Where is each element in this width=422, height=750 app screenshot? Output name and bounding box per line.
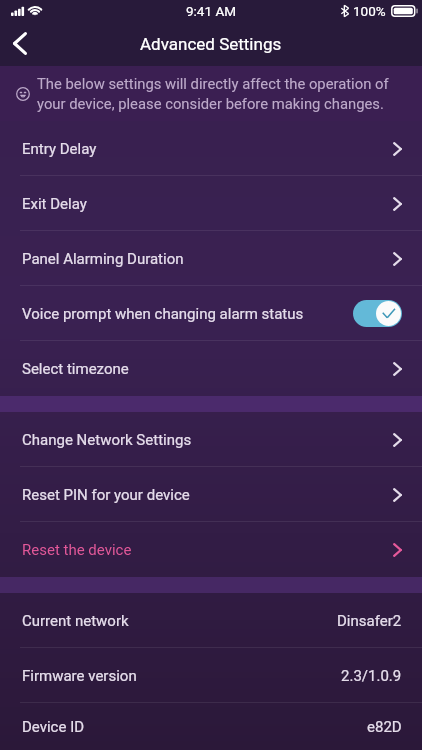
button[interactable]: Voice prompt toggle xyxy=(353,300,402,327)
staticText: Advanced Settings xyxy=(140,34,282,54)
button[interactable]: Panel Alarming Duration xyxy=(0,231,422,286)
staticText: Reset the device xyxy=(22,541,132,559)
staticText: 9:41 AM xyxy=(186,3,236,19)
staticText: 100% xyxy=(353,3,386,19)
staticText: Reset PIN for your device xyxy=(22,486,190,504)
button[interactable]: Firmware version xyxy=(0,648,422,703)
staticText: Select timezone xyxy=(22,360,129,378)
staticText: Dinsafer2 xyxy=(337,612,402,630)
button[interactable]: Reset the device xyxy=(0,522,422,577)
button[interactable]: Change Network Settings xyxy=(0,412,422,467)
staticText: Panel Alarming Duration xyxy=(22,250,184,268)
button[interactable]: Select timezone xyxy=(0,341,422,396)
staticText: The below settings will directly affect … xyxy=(37,75,389,112)
staticText: Device ID xyxy=(22,718,85,736)
staticText: Current network xyxy=(22,612,129,630)
button[interactable]: Current network xyxy=(0,593,422,648)
button[interactable]: Device ID xyxy=(0,703,422,750)
button[interactable]: Back xyxy=(0,21,40,66)
button[interactable]: Reset PIN for your device xyxy=(0,467,422,522)
staticText: 2.3/1.0.9 xyxy=(341,667,402,685)
button[interactable]: Voice prompt when changing alarm status xyxy=(0,286,422,341)
staticText: Voice prompt when changing alarm status xyxy=(22,305,304,323)
button[interactable]: Entry Delay xyxy=(0,121,422,176)
staticText: e82D xyxy=(367,718,402,736)
staticText: Firmware version xyxy=(22,667,137,685)
staticText: Entry Delay xyxy=(22,140,97,158)
button[interactable]: Exit Delay xyxy=(0,176,422,231)
staticText: Change Network Settings xyxy=(22,431,192,449)
staticText: Exit Delay xyxy=(22,195,87,213)
